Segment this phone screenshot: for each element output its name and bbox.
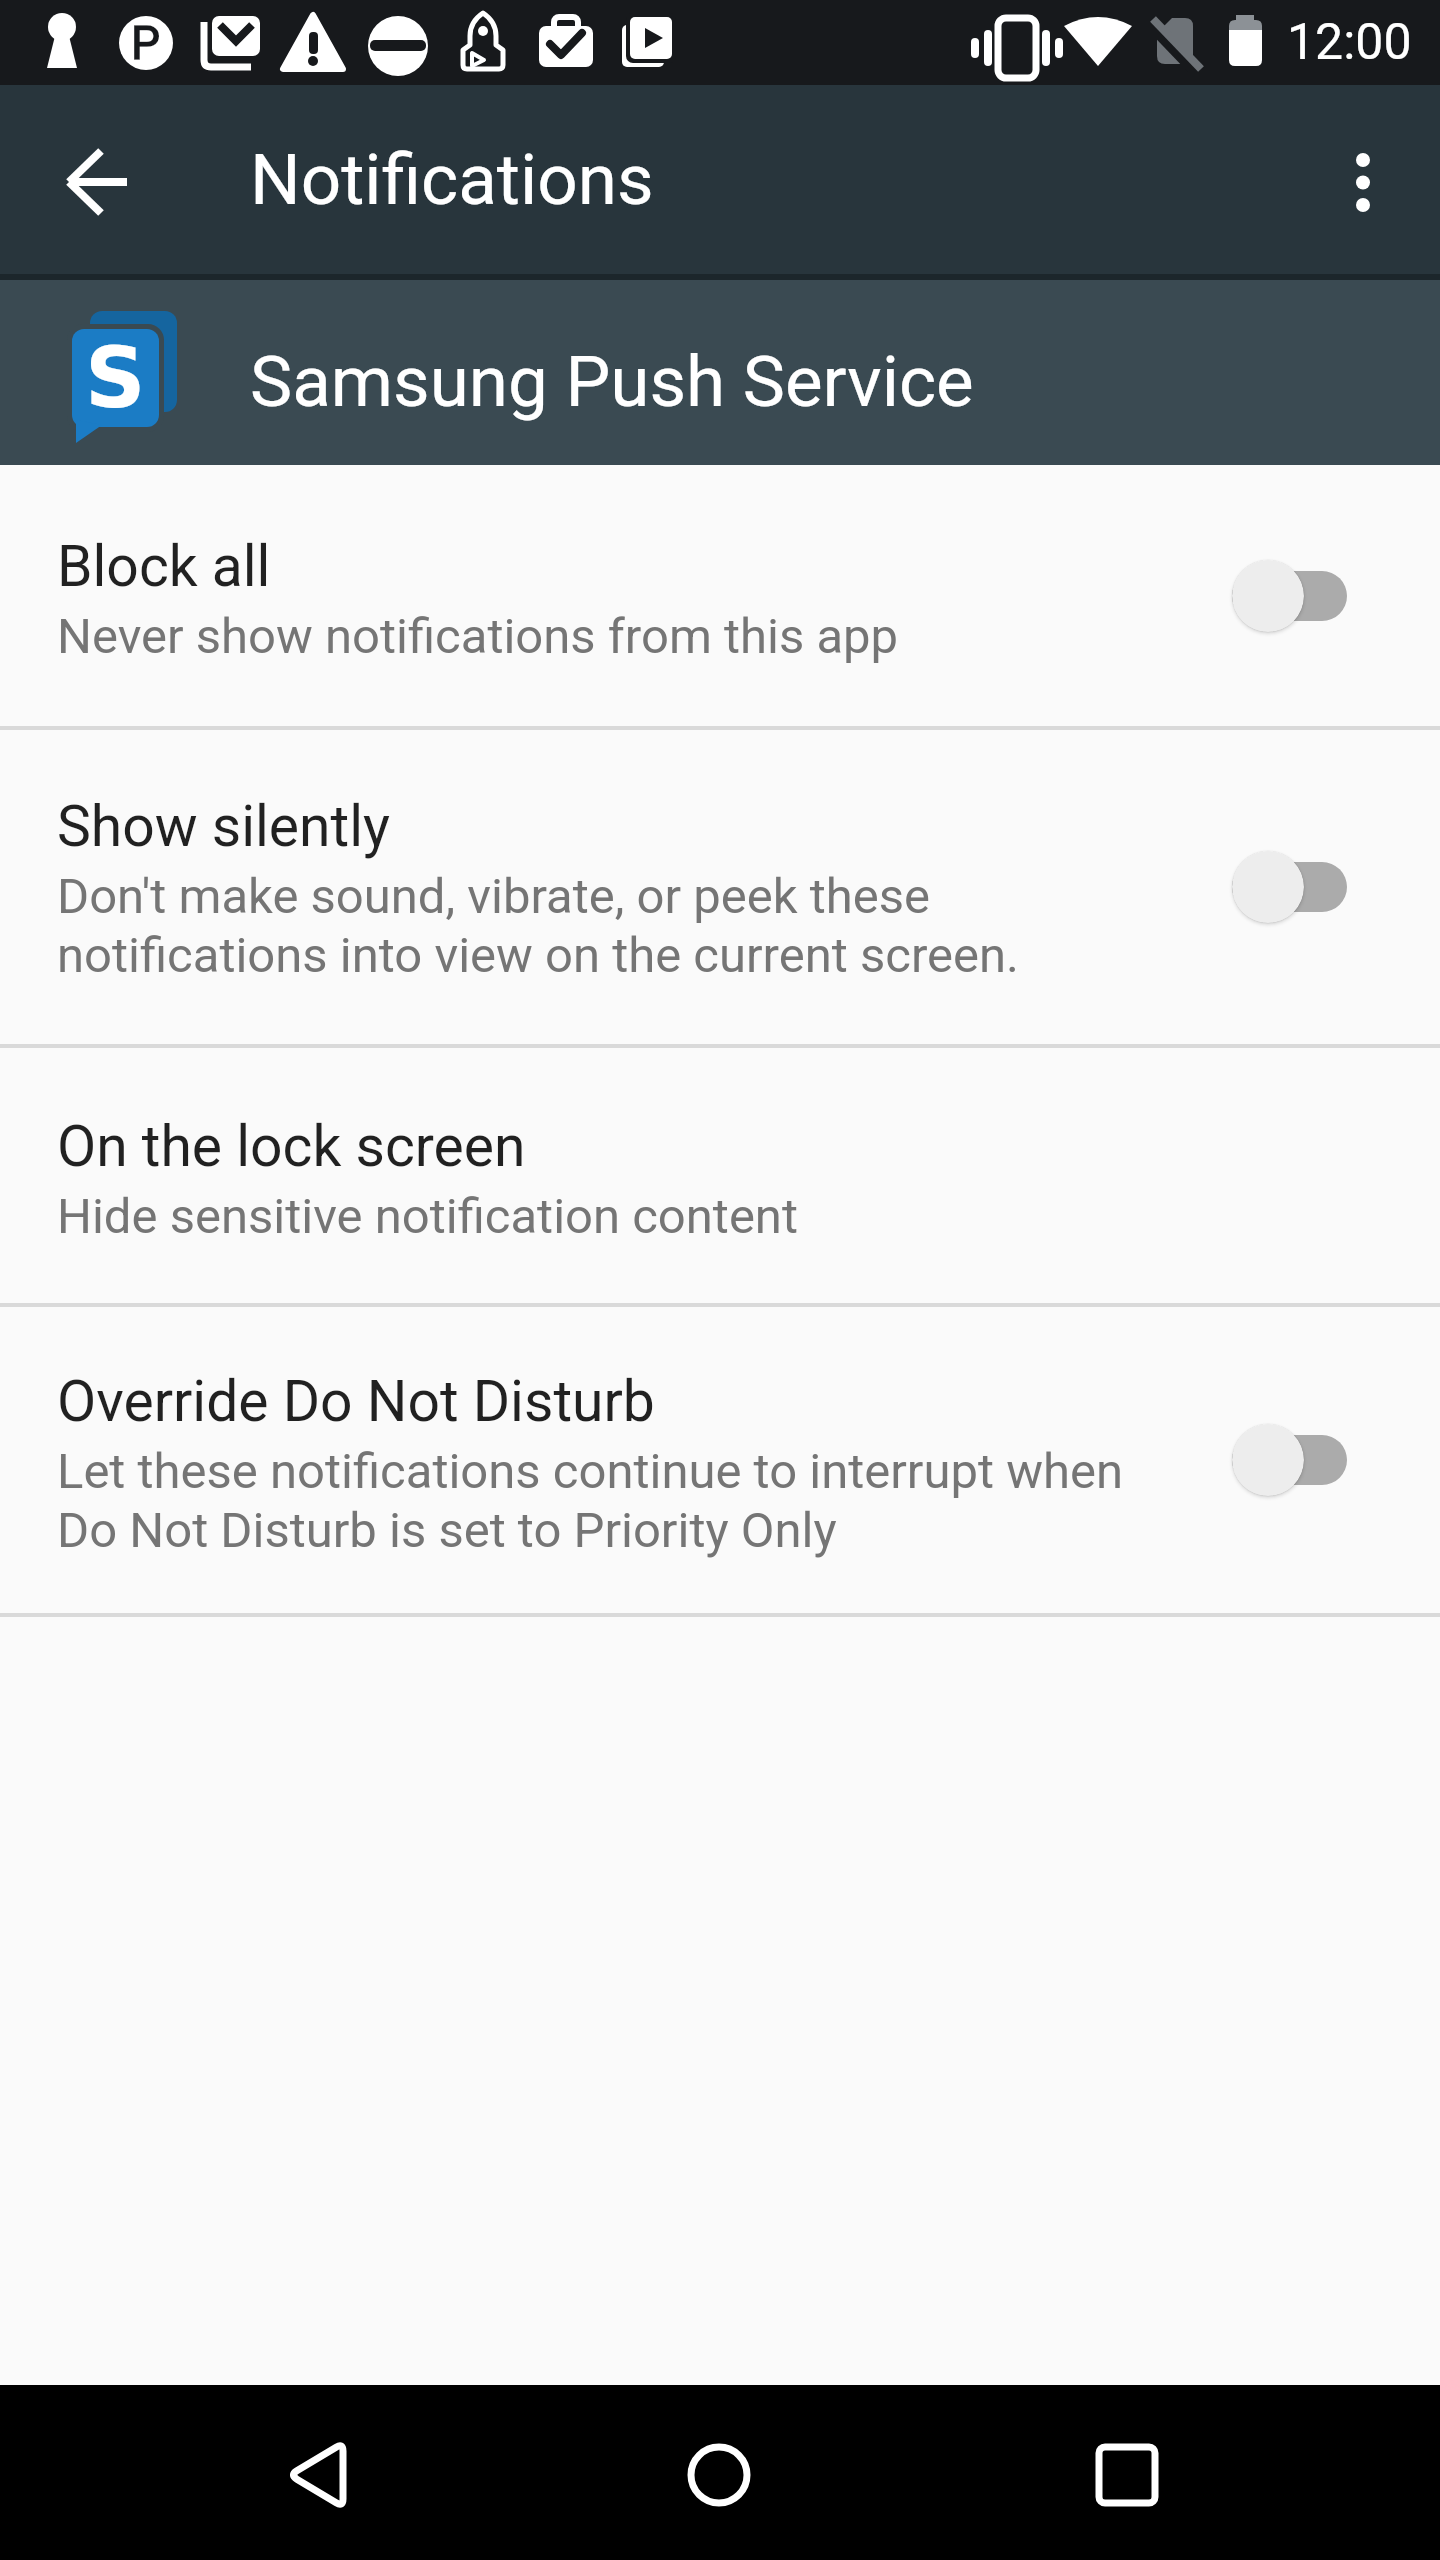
staticText: On the lock screen (57, 1113, 526, 1180)
staticText: Hide sensitive notification content (57, 1188, 798, 1245)
staticText: 12:00 (1287, 13, 1412, 72)
staticText: P (131, 16, 161, 70)
staticText: Never show notifications from this app (57, 608, 899, 665)
staticText: Block all (57, 533, 271, 600)
staticText: Notifications (250, 138, 654, 221)
button[interactable] (664, 2415, 774, 2525)
staticText: Show silently (57, 793, 391, 860)
staticText: S (85, 329, 146, 427)
button[interactable]: On the lock screen (0, 1048, 1440, 1303)
button[interactable] (44, 128, 154, 238)
button[interactable]: Override Do Not Disturb (0, 1307, 1440, 1613)
staticText: Let these notifications continue to inte… (57, 1443, 1162, 1559)
button[interactable]: Block all (0, 465, 1440, 726)
button[interactable] (1232, 1424, 1347, 1496)
button[interactable] (1232, 560, 1347, 632)
button[interactable]: Show silently (0, 730, 1440, 1044)
staticText: Override Do Not Disturb (57, 1368, 655, 1435)
staticText: Don't make sound, vibrate, or peek these… (57, 868, 1162, 984)
staticText: Samsung Push Service (250, 340, 974, 423)
button[interactable] (1232, 851, 1347, 923)
button[interactable]: S (0, 280, 1440, 465)
button[interactable] (1330, 144, 1396, 221)
button[interactable] (262, 2415, 372, 2525)
button[interactable] (1072, 2415, 1182, 2525)
